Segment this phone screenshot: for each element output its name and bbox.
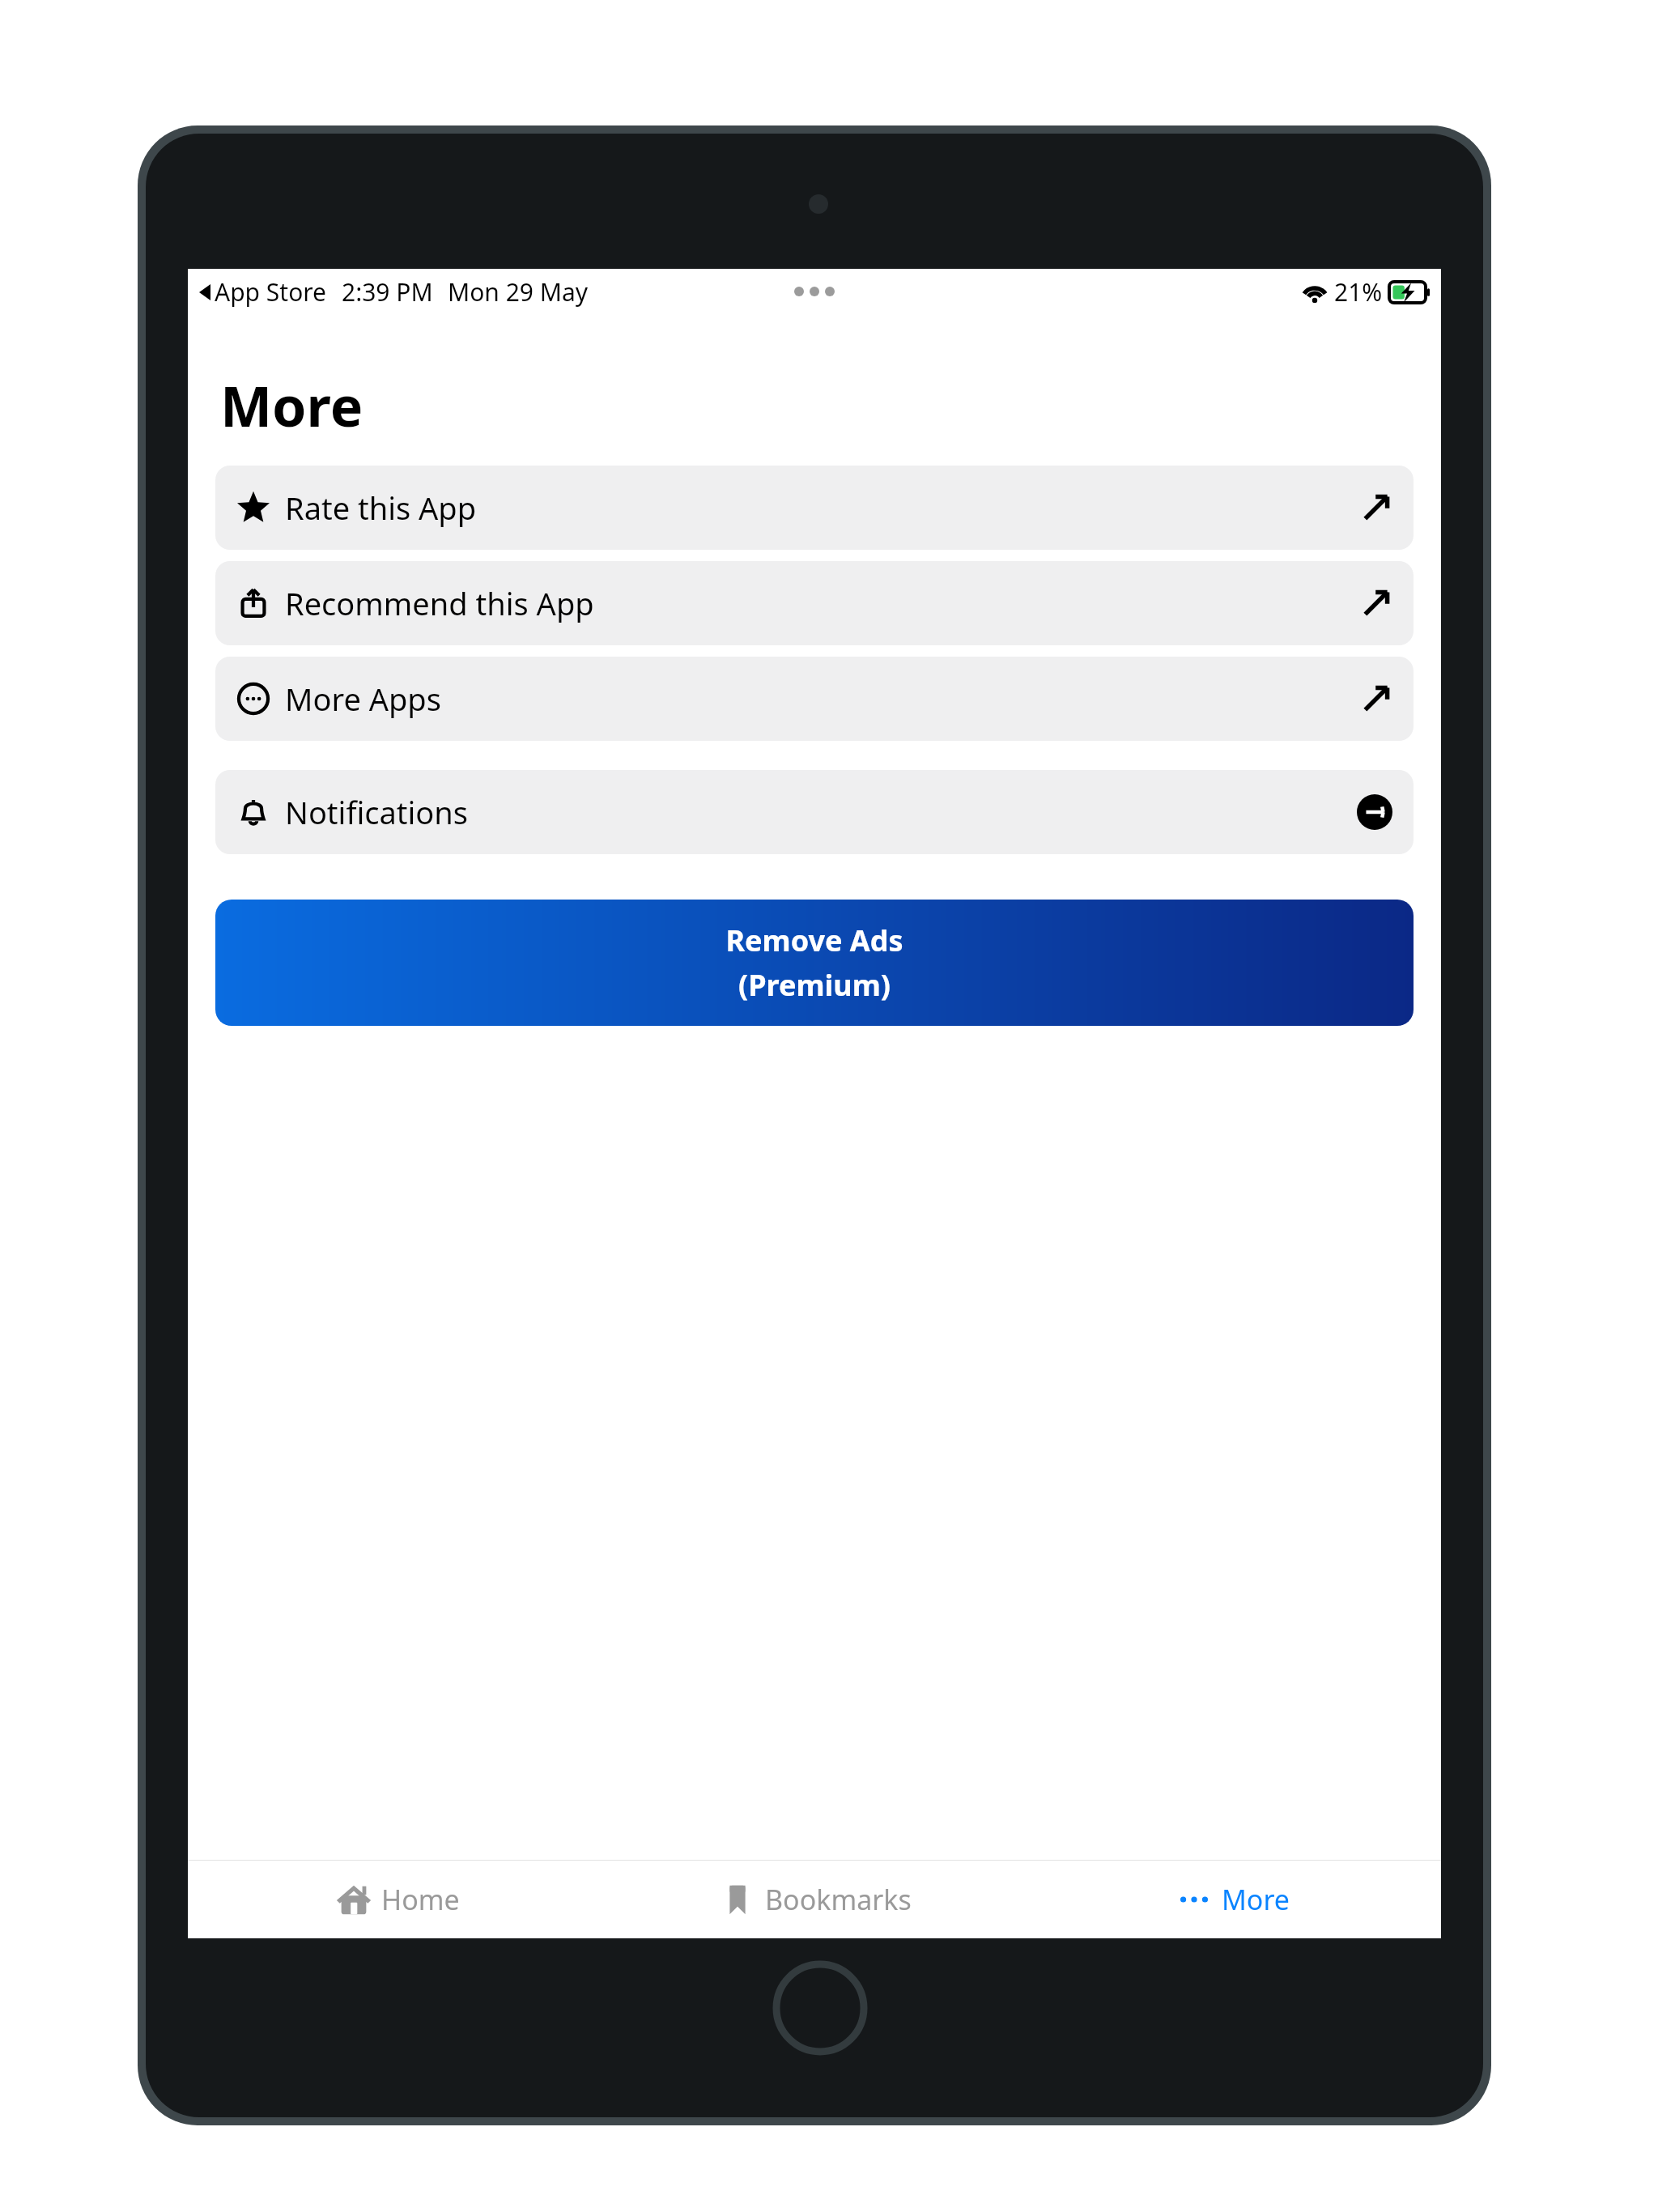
staticText: More <box>220 368 363 443</box>
button[interactable]: More Apps <box>215 657 1414 741</box>
staticText: Recommend this App <box>285 582 594 624</box>
button[interactable]: More <box>1023 1861 1441 1938</box>
staticText: 2:39 PM <box>342 275 433 308</box>
button[interactable]: Rate this App <box>215 466 1414 550</box>
button[interactable]: Notifications <box>215 770 1414 854</box>
button[interactable]: Recommend this App <box>215 561 1414 645</box>
staticText: Mon 29 May <box>448 275 589 308</box>
staticText: 21% <box>1334 275 1383 308</box>
button[interactable]: Bookmarks <box>606 1861 1023 1938</box>
staticText: Remove Ads <box>725 921 903 960</box>
staticText: Home <box>381 1881 460 1918</box>
staticText: Bookmarks <box>765 1881 912 1918</box>
staticText: App Store <box>215 275 327 308</box>
staticText: More <box>1222 1881 1290 1918</box>
staticText: Rate this App <box>285 487 477 529</box>
staticText: (Premium) <box>738 965 891 1005</box>
button[interactable]: Home <box>188 1861 606 1938</box>
staticText: Notifications <box>285 791 469 833</box>
button[interactable]: Remove Ads <box>215 900 1414 1026</box>
staticText: More Apps <box>285 678 441 720</box>
